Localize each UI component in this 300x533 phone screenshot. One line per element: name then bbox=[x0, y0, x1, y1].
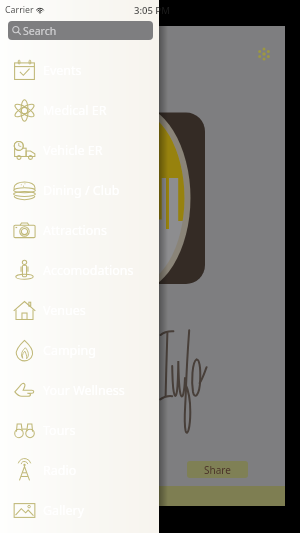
button[interactable]: Your Wellness bbox=[0, 370, 159, 410]
staticText: Medical ER bbox=[43, 102, 107, 119]
button[interactable]: Search bbox=[8, 21, 153, 40]
staticText: Your Wellness bbox=[43, 382, 125, 399]
staticText: Share bbox=[204, 463, 231, 477]
button[interactable]: Dining / Club bbox=[0, 170, 159, 210]
button[interactable]: Tours bbox=[0, 410, 159, 450]
button[interactable]: Share bbox=[187, 461, 248, 478]
staticText: Gallery bbox=[43, 502, 85, 519]
button[interactable]: Medical ER bbox=[0, 90, 159, 130]
staticText: Carrier bbox=[5, 4, 34, 16]
staticText: Search bbox=[23, 24, 57, 38]
button[interactable]: Events bbox=[0, 50, 159, 90]
button[interactable]: Venues bbox=[0, 290, 159, 330]
staticText: Accomodations bbox=[43, 262, 134, 279]
button[interactable]: Accomodations bbox=[0, 250, 159, 290]
staticText: Events bbox=[43, 62, 82, 79]
button[interactable]: Vehicle ER bbox=[0, 130, 159, 170]
button[interactable]: Radio bbox=[0, 450, 159, 490]
staticText: Tours bbox=[43, 422, 76, 439]
button[interactable]: Camping bbox=[0, 330, 159, 370]
staticText: 3:05 PM bbox=[134, 4, 170, 17]
staticText: Dining / Club bbox=[43, 182, 120, 199]
staticText: Attractions bbox=[43, 222, 107, 239]
staticText: Radio bbox=[43, 462, 77, 479]
staticText: Vehicle ER bbox=[43, 142, 103, 159]
staticText: Venues bbox=[43, 302, 86, 319]
button[interactable]: Gallery bbox=[0, 490, 159, 530]
button[interactable]: Attractions bbox=[0, 210, 159, 250]
staticText: Camping bbox=[43, 342, 96, 359]
